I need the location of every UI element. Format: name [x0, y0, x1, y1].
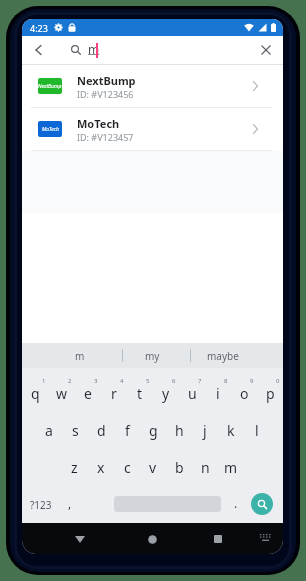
staticText: MoTech [77, 116, 120, 131]
button[interactable]: my [122, 343, 182, 368]
button[interactable]: MoTech [22, 108, 283, 150]
staticText: x [97, 458, 105, 477]
button[interactable]: z [61, 449, 88, 486]
button[interactable]: l [244, 412, 270, 449]
button[interactable]: . [226, 486, 246, 523]
button[interactable]: a [35, 412, 62, 449]
staticText: 0 [276, 377, 280, 385]
button[interactable]: o [231, 368, 257, 412]
staticText: r [111, 384, 117, 403]
button[interactable]: i [205, 368, 231, 412]
button[interactable]: q [22, 368, 49, 412]
button[interactable] [206, 527, 230, 551]
staticText: 4 [120, 377, 124, 385]
staticText: g [149, 421, 158, 440]
button[interactable] [68, 527, 92, 551]
button[interactable]: c [114, 449, 140, 486]
button[interactable]: s [62, 412, 88, 449]
staticText: 7 [198, 377, 202, 385]
button[interactable]: y [153, 368, 179, 412]
button[interactable]: x [88, 449, 114, 486]
button[interactable]: k [218, 412, 244, 449]
staticText: n [201, 458, 210, 477]
staticText: 8 [224, 377, 228, 385]
staticText: o [240, 384, 249, 403]
staticText: maybe [207, 349, 239, 363]
button[interactable]: r [101, 368, 127, 412]
staticText: p [266, 384, 275, 403]
button[interactable]: v [140, 449, 166, 486]
button[interactable]: e [75, 368, 101, 412]
staticText: MoTech [42, 126, 59, 133]
staticText: w [56, 384, 68, 403]
staticText: l [255, 421, 259, 440]
staticText: m [75, 349, 85, 363]
button[interactable]: , [60, 486, 80, 523]
staticText: e [84, 384, 92, 403]
button[interactable]: m [50, 343, 110, 368]
staticText: ?123 [30, 498, 52, 512]
button[interactable]: n [192, 449, 218, 486]
staticText: h [175, 421, 184, 440]
staticText: z [71, 458, 78, 477]
button[interactable]: w [49, 368, 75, 412]
staticText: k [227, 421, 235, 440]
button[interactable]: m [218, 449, 244, 486]
button[interactable] [254, 527, 276, 549]
staticText: u [188, 384, 197, 403]
staticText: my [145, 349, 160, 363]
staticText: 4:23 [30, 22, 48, 34]
staticText: q [31, 384, 40, 403]
staticText: i [216, 384, 220, 403]
staticText: , [68, 495, 72, 511]
button[interactable]: t [127, 368, 153, 412]
staticText: a [45, 421, 53, 440]
staticText: NextBump [38, 83, 62, 90]
staticText: m [224, 458, 238, 477]
staticText: 5 [146, 377, 150, 385]
button[interactable]: maybe [193, 343, 253, 368]
staticText: f [125, 421, 130, 440]
staticText: 9 [250, 377, 254, 385]
button[interactable] [140, 527, 164, 551]
button[interactable]: NextBump [22, 65, 283, 107]
button[interactable]: b [166, 449, 192, 486]
button[interactable]: h [166, 412, 192, 449]
staticText: ID: #V123456 [77, 88, 134, 100]
button[interactable]: u [179, 368, 205, 412]
button[interactable] [251, 493, 273, 515]
button[interactable]: j [192, 412, 218, 449]
staticText: m [88, 41, 100, 57]
button[interactable]: d [88, 412, 114, 449]
staticText: ID: #V123457 [77, 131, 134, 143]
staticText: 6 [172, 377, 176, 385]
button[interactable]: ?123 [24, 486, 58, 523]
staticText: 3 [94, 377, 98, 385]
staticText: b [175, 458, 184, 477]
staticText: t [137, 384, 143, 403]
button[interactable] [255, 39, 277, 61]
staticText: NextBump [77, 73, 136, 88]
staticText: 2 [68, 377, 72, 385]
button[interactable]: p [257, 368, 283, 412]
button[interactable]: f [114, 412, 140, 449]
staticText: j [203, 421, 207, 440]
staticText: v [149, 458, 157, 477]
staticText: y [162, 384, 170, 403]
staticText: c [124, 458, 131, 477]
staticText: 1 [42, 377, 46, 385]
staticText: s [72, 421, 79, 440]
button[interactable]: g [140, 412, 166, 449]
staticText: d [97, 421, 106, 440]
staticText: . [234, 495, 238, 511]
button[interactable] [28, 40, 48, 60]
